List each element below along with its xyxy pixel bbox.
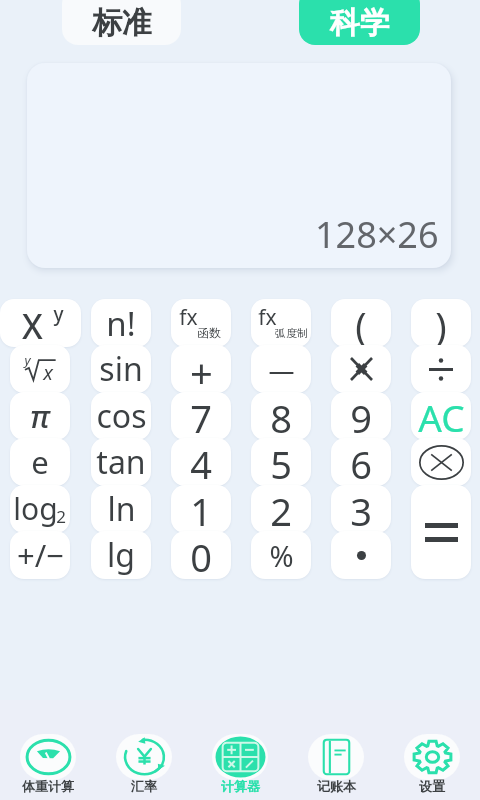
staticText: log — [13, 488, 58, 529]
button[interactable]: — — [251, 345, 311, 393]
staticText: 7 — [190, 392, 212, 440]
staticText: 2 — [270, 485, 292, 533]
button[interactable]: ) — [411, 299, 471, 347]
button[interactable]: 体重计算 — [0, 700, 96, 800]
button[interactable]: AC clear — [411, 392, 471, 440]
staticText: y — [53, 301, 64, 327]
button[interactable]: 2 — [251, 485, 311, 533]
button[interactable]: tan — [91, 438, 151, 486]
staticText: 0 — [190, 531, 212, 579]
staticText: ( — [355, 299, 367, 347]
button[interactable]: equals — [411, 485, 471, 579]
button[interactable]: 设置 — [384, 700, 480, 800]
staticText: lg — [107, 533, 135, 577]
staticText: 弧度制 — [275, 326, 308, 340]
button[interactable]: delete — [411, 438, 471, 486]
staticText: + — [190, 345, 213, 393]
staticText: 2 — [56, 505, 66, 528]
button[interactable]: 4 — [171, 438, 231, 486]
button[interactable]: 1 — [171, 485, 231, 533]
staticText: 4 — [190, 438, 212, 486]
staticText: % — [269, 536, 294, 575]
staticText: 记账本 — [317, 778, 356, 794]
button[interactable]: x power y — [0, 299, 81, 347]
button[interactable]: sin — [91, 345, 151, 393]
button[interactable]: 汇率 — [96, 700, 192, 800]
button[interactable]: 0 — [171, 531, 231, 579]
button[interactable]: 9 — [331, 392, 391, 440]
button[interactable]: 标准 — [62, 0, 181, 45]
staticText: y — [24, 351, 31, 369]
staticText: — — [268, 352, 295, 387]
staticText: 128×26 — [315, 210, 439, 259]
button[interactable]: + — [171, 345, 231, 393]
staticText: 9 — [350, 392, 372, 440]
button[interactable]: 3 — [331, 485, 391, 533]
button[interactable]: 6 — [331, 438, 391, 486]
staticText: 设置 — [419, 778, 445, 794]
staticText: 标准 — [92, 4, 152, 42]
button[interactable]: plus minus — [10, 531, 70, 579]
staticText: +/− — [17, 534, 64, 576]
button[interactable]: ( — [331, 299, 391, 347]
button[interactable]: 5 — [251, 438, 311, 486]
staticText: cos — [96, 394, 147, 438]
button[interactable]: ln — [91, 485, 151, 533]
button[interactable]: radian mode — [251, 299, 311, 347]
staticText: AC — [418, 392, 465, 440]
button[interactable]: multiply — [331, 345, 391, 393]
button[interactable]: 计算器 — [192, 700, 288, 800]
staticText: fx — [179, 303, 198, 332]
staticText: x — [43, 359, 53, 386]
button[interactable]: functions — [171, 299, 231, 347]
staticText: π — [30, 395, 50, 437]
staticText: sin — [99, 347, 143, 391]
button[interactable]: % — [251, 531, 311, 579]
button[interactable]: log base 2 — [10, 485, 70, 533]
button[interactable]: divide — [411, 345, 471, 393]
staticText: n! — [106, 301, 136, 346]
staticText: 体重计算 — [22, 778, 74, 794]
button[interactable]: 科学 — [299, 0, 420, 45]
staticText: 3 — [350, 485, 372, 533]
button[interactable]: nth root — [10, 345, 70, 393]
button[interactable]: n! — [91, 299, 151, 347]
staticText: e — [31, 441, 49, 483]
button[interactable]: decimal point — [331, 531, 391, 579]
staticText: 计算器 — [221, 778, 260, 794]
button[interactable]: 8 — [251, 392, 311, 440]
button[interactable]: cos — [91, 392, 151, 440]
staticText: tan — [96, 440, 146, 484]
button[interactable]: lg — [91, 531, 151, 579]
staticText: 6 — [350, 438, 372, 486]
button[interactable]: pi — [10, 392, 70, 440]
staticText: ) — [435, 299, 447, 347]
staticText: 8 — [270, 392, 292, 440]
button[interactable]: e — [10, 438, 70, 486]
staticText: fx — [258, 303, 277, 332]
staticText: 汇率 — [131, 778, 157, 794]
staticText: 1 — [190, 485, 212, 533]
staticText: 函数 — [197, 325, 221, 340]
staticText: X — [22, 303, 43, 347]
staticText: 科学 — [330, 4, 390, 42]
button[interactable]: 记账本 — [288, 700, 384, 800]
button[interactable]: 7 — [171, 392, 231, 440]
staticText: 5 — [270, 438, 292, 486]
staticText: ln — [107, 487, 136, 531]
